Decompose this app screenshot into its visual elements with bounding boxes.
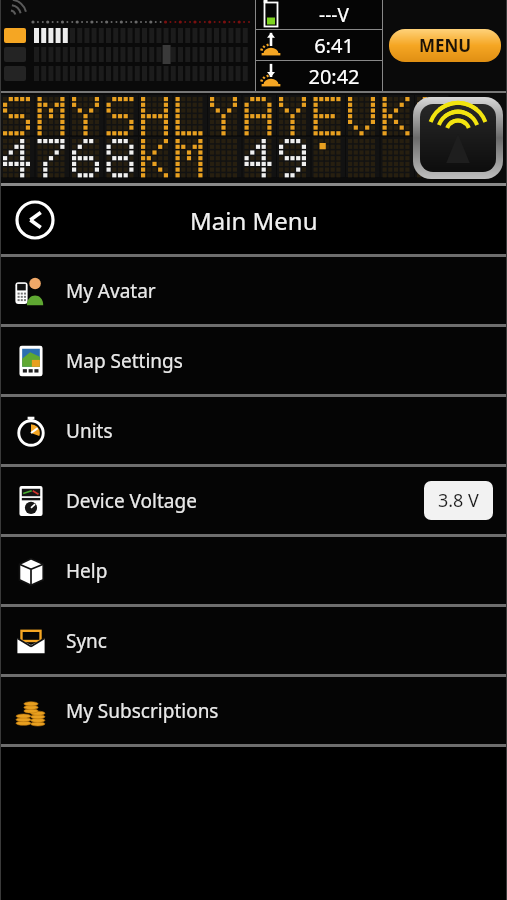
button[interactable]: Back <box>12 197 58 243</box>
staticText: Help <box>66 558 108 584</box>
button[interactable]: Device Voltage <box>0 467 507 534</box>
button[interactable]: My Subscriptions <box>0 677 507 744</box>
staticText: Main Menu <box>190 204 318 237</box>
button[interactable]: Units <box>0 397 507 464</box>
staticText: 20:42 <box>286 63 382 90</box>
button[interactable]: My Avatar <box>0 257 507 324</box>
staticText: 6:41 <box>286 32 382 59</box>
staticText: 3.8 V <box>438 488 479 513</box>
staticText: Units <box>66 418 113 444</box>
staticText: My Subscriptions <box>66 698 219 724</box>
button[interactable]: Map Settings <box>0 327 507 394</box>
staticText: Map Settings <box>66 348 183 374</box>
button[interactable]: Help <box>0 537 507 604</box>
staticText: Device Voltage <box>66 488 197 514</box>
button[interactable]: Sync <box>0 607 507 674</box>
staticText: Sync <box>66 628 107 654</box>
button[interactable]: MENU <box>389 29 501 62</box>
staticText: My Avatar <box>66 278 156 304</box>
staticText: ---V <box>286 2 382 28</box>
staticText: MENU <box>419 34 472 57</box>
